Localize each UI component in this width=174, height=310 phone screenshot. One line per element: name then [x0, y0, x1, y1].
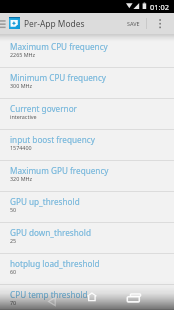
staticText: 1574400: [10, 144, 32, 151]
staticText: 60: [10, 268, 17, 275]
staticText: interactive: [10, 113, 37, 120]
button[interactable]: More options: [152, 13, 168, 34]
button[interactable]: Current governor: [0, 99, 174, 130]
staticText: 2265 MHz: [10, 51, 36, 58]
staticText: CPU temp threshold: [10, 289, 88, 300]
button[interactable]: GPU up_threshold: [0, 192, 174, 223]
button[interactable]: Minimum CPU frequency: [0, 68, 174, 99]
staticText: 25: [10, 237, 17, 244]
button[interactable]: Back: [38, 291, 66, 310]
button[interactable]: Open navigation drawer: [0, 18, 8, 30]
staticText: Maximum GPU frequency: [10, 165, 109, 176]
staticText: GPU down_threshold: [10, 227, 91, 238]
button[interactable]: CPU temp threshold: [0, 285, 174, 310]
button[interactable]: GPU down_threshold: [0, 223, 174, 254]
staticText: SAVE: [127, 20, 140, 27]
button[interactable]: Home: [78, 291, 106, 310]
button[interactable]: Recent apps: [119, 291, 147, 310]
staticText: Minimum CPU frequency: [10, 72, 106, 83]
staticText: 300 MHz: [10, 82, 33, 89]
staticText: Per-App Modes: [24, 18, 85, 29]
staticText: input boost frequency: [10, 134, 95, 145]
button[interactable]: Maximum GPU frequency: [0, 161, 174, 192]
button[interactable]: Maximum CPU frequency: [0, 37, 174, 68]
staticText: hotplug load_threshold: [10, 258, 100, 269]
button[interactable]: SAVE: [122, 13, 144, 34]
staticText: 320 MHz: [10, 175, 33, 182]
staticText: Maximum CPU frequency: [10, 41, 108, 52]
staticText: 01:02: [150, 2, 169, 12]
staticText: Current governor: [10, 103, 77, 114]
staticText: 70: [10, 299, 17, 306]
button[interactable]: input boost frequency: [0, 130, 174, 161]
button[interactable]: hotplug load_threshold: [0, 254, 174, 285]
staticText: 50: [10, 206, 17, 213]
staticText: GPU up_threshold: [10, 196, 80, 207]
